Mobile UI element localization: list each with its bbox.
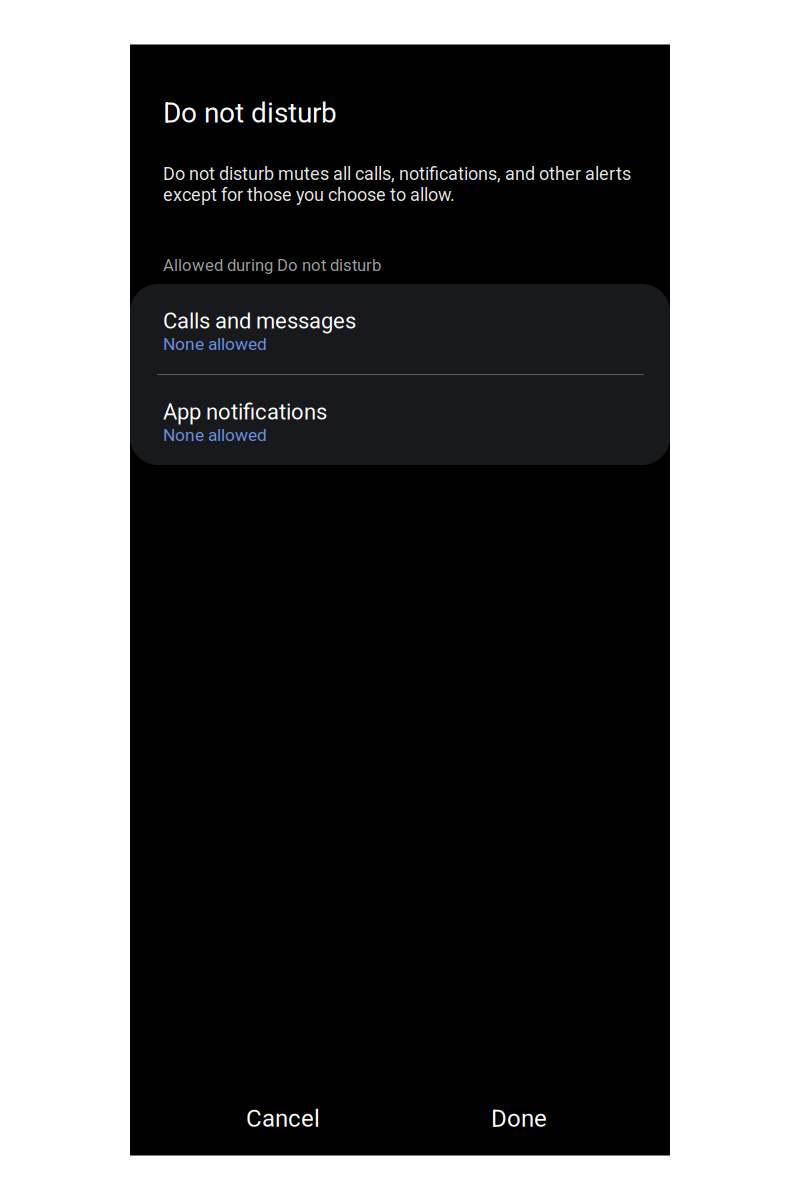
staticText: Do not disturb mutes all calls, notifica… [163,163,631,205]
button[interactable]: Calls and messages [130,284,670,374]
staticText: App notifications [163,399,327,425]
button[interactable]: App notifications [130,375,670,465]
button[interactable]: Done [424,1074,614,1153]
staticText: Cancel [246,1104,320,1133]
staticText: Do not disturb [163,96,337,129]
staticText: Allowed during Do not disturb [163,255,381,275]
staticText: Calls and messages [163,308,356,334]
staticText: Done [491,1104,547,1133]
button[interactable]: Cancel [188,1074,378,1153]
staticText: None allowed [163,425,267,445]
staticText: None allowed [163,334,267,354]
